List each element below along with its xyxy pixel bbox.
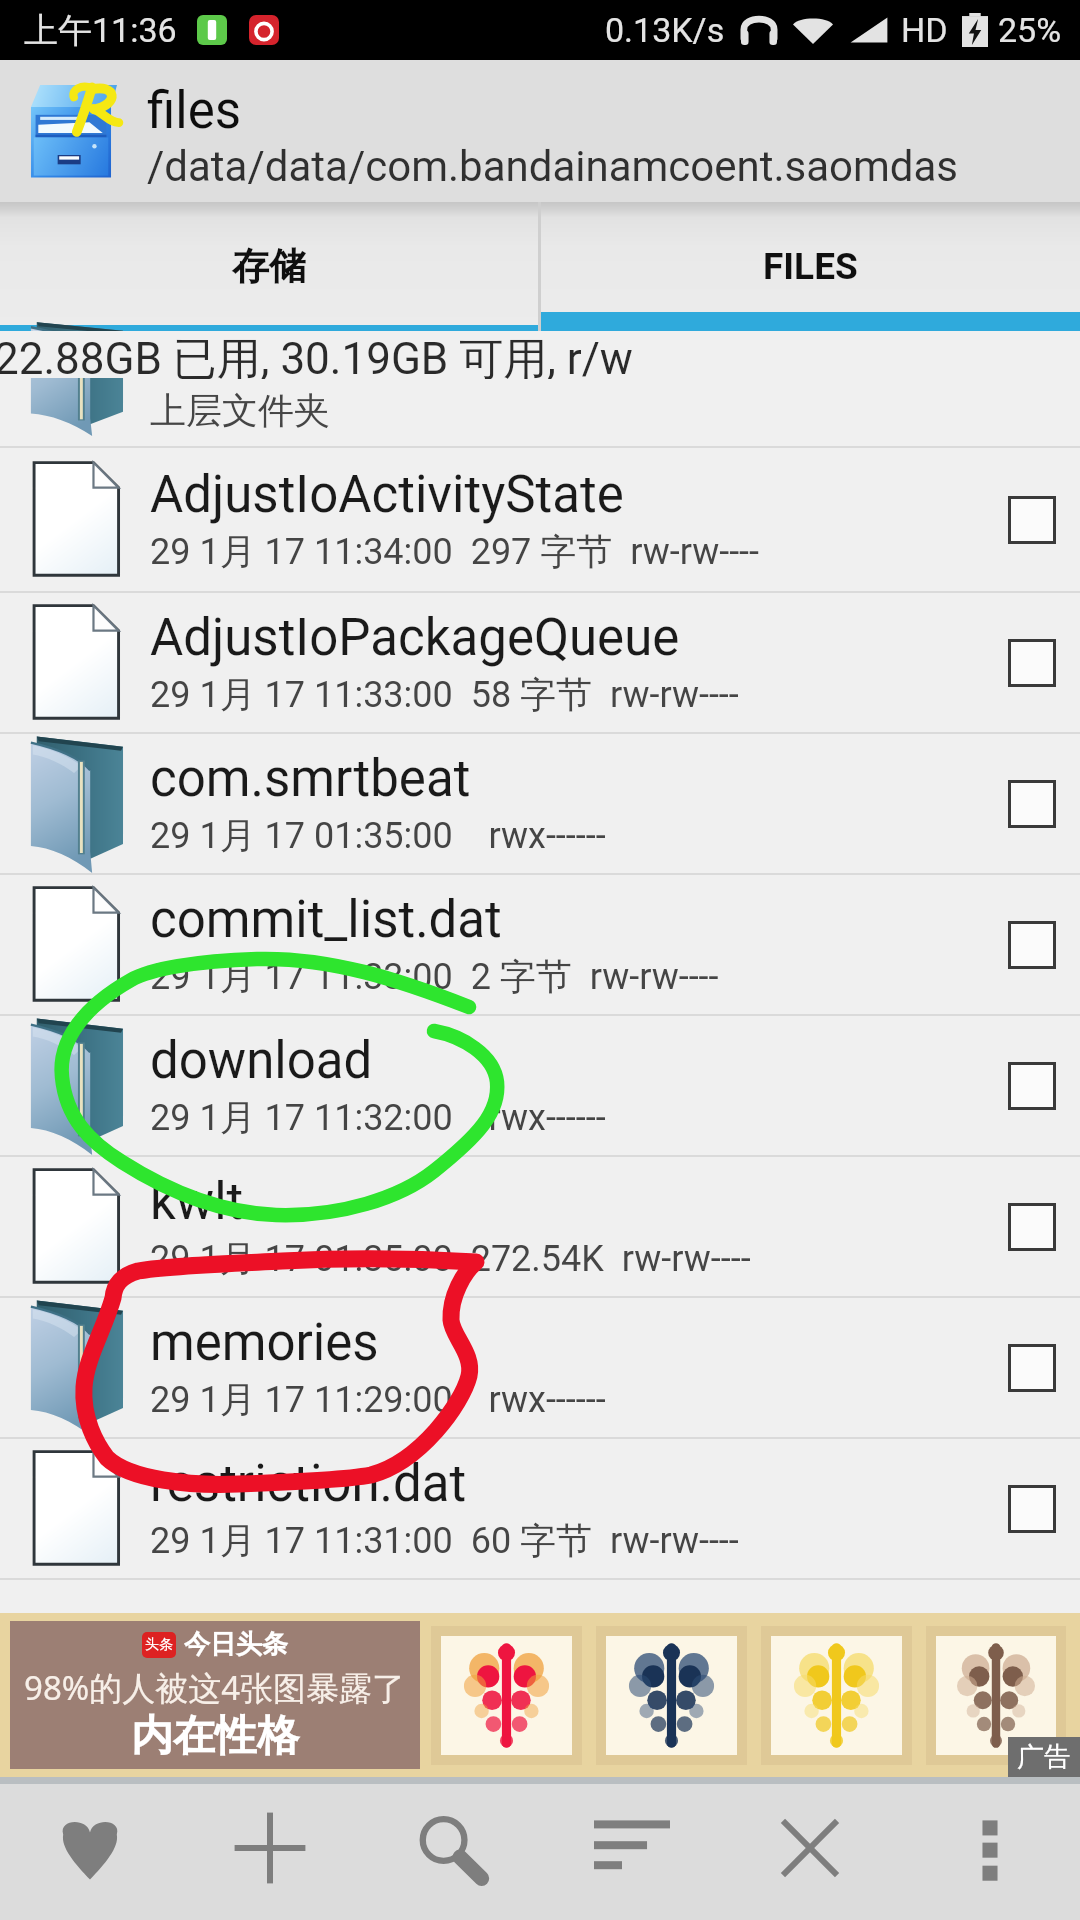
button[interactable]: kwlt xyxy=(0,1157,1080,1296)
staticText: 29 1月 17 11:33:00 58 字节 rw-rw---- xyxy=(150,672,739,717)
staticText: 上层文件夹 xyxy=(150,388,330,433)
button[interactable]: Sort xyxy=(540,1780,720,1916)
staticText: 内在性格 xyxy=(131,1710,299,1763)
button[interactable]: 存储 xyxy=(0,202,538,331)
staticText: restriction.dat xyxy=(150,1454,467,1514)
staticText: AdjustIoActivityState xyxy=(150,465,624,525)
button[interactable]: More options xyxy=(900,1780,1080,1916)
staticText: 今日头条 xyxy=(184,1628,288,1661)
button[interactable]: commit_list.dat xyxy=(0,875,1080,1014)
staticText: memories xyxy=(150,1313,379,1373)
staticText: com.smrtbeat xyxy=(150,749,471,809)
staticText: 29 1月 17 01:35:00 272.54K rw-rw---- xyxy=(150,1236,751,1281)
button[interactable]: Favorites xyxy=(0,1780,180,1916)
staticText: 22.88GB 已用, 30.19GB 可用, r/w xyxy=(0,332,633,379)
button[interactable]: AdjustIoPackageQueue xyxy=(0,593,1080,732)
staticText: download xyxy=(150,1031,373,1091)
button[interactable]: 头条 xyxy=(0,1613,1080,1777)
staticText: 29 1月 17 11:29:00 rwx------ xyxy=(150,1377,606,1422)
staticText: .. xyxy=(150,324,177,384)
staticText: 98%的人被这4张图暴露了 xyxy=(24,1665,406,1710)
staticText: /data/data/com.bandainamcoent.saomdas xyxy=(147,142,959,191)
button[interactable]: Select download xyxy=(1008,1062,1056,1110)
staticText: 存储 xyxy=(232,243,306,290)
staticText: 29 1月 17 01:35:00 rwx------ xyxy=(150,813,606,858)
button[interactable]: FILES xyxy=(541,202,1080,331)
staticText: 25% xyxy=(998,10,1062,50)
button[interactable]: Select kwlt xyxy=(1008,1203,1056,1251)
staticText: 29 1月 17 11:32:00 rwx------ xyxy=(150,1095,606,1140)
button[interactable]: Select AdjustIoActivityState xyxy=(1008,496,1056,544)
staticText: AdjustIoPackageQueue xyxy=(150,608,680,668)
button[interactable]: AdjustIoActivityState xyxy=(0,448,1080,591)
button[interactable]: Select memories xyxy=(1008,1344,1056,1392)
button[interactable]: download xyxy=(0,1016,1080,1155)
staticText: 上午11:36 xyxy=(24,9,177,52)
button[interactable]: Select AdjustIoPackageQueue xyxy=(1008,639,1056,687)
staticText: 29 1月 17 11:33:00 2 字节 rw-rw---- xyxy=(150,954,719,999)
button[interactable]: memories xyxy=(0,1298,1080,1437)
button[interactable]: files xyxy=(0,60,1080,202)
button[interactable]: Search xyxy=(360,1780,540,1916)
staticText: kwlt xyxy=(150,1172,244,1232)
button[interactable]: Close xyxy=(720,1780,900,1916)
staticText: 广告 xyxy=(1017,1740,1071,1774)
staticText: 0.13K/s xyxy=(605,10,725,50)
staticText: 29 1月 17 11:34:00 297 字节 rw-rw---- xyxy=(150,529,759,574)
staticText: 头条 xyxy=(145,1636,173,1654)
staticText: 29 1月 17 11:31:00 60 字节 rw-rw---- xyxy=(150,1518,739,1563)
button[interactable]: restriction.dat xyxy=(0,1439,1080,1578)
button[interactable]: Select commit_list.dat xyxy=(1008,921,1056,969)
button[interactable]: New folder xyxy=(180,1780,360,1916)
staticText: files xyxy=(147,81,242,141)
button[interactable]: Select restriction.dat xyxy=(1008,1485,1056,1533)
staticText: HD xyxy=(901,10,948,50)
staticText: FILES xyxy=(763,245,858,288)
button[interactable]: Select com.smrtbeat xyxy=(1008,780,1056,828)
staticText: commit_list.dat xyxy=(150,890,502,950)
button[interactable]: com.smrtbeat xyxy=(0,734,1080,873)
